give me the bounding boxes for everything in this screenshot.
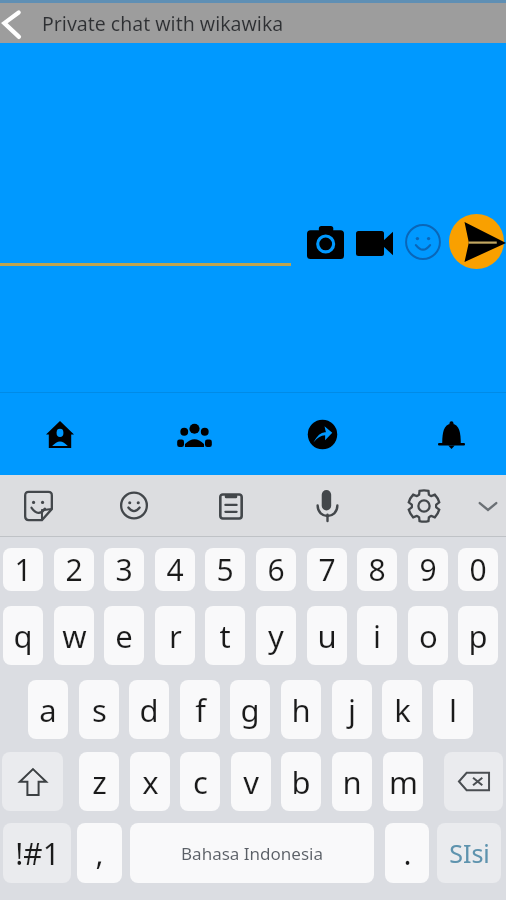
staticText: 7 xyxy=(318,549,336,590)
staticText: x xyxy=(142,761,159,803)
button[interactable]: Share xyxy=(305,417,340,452)
button[interactable]: Clipboard xyxy=(207,482,255,530)
button[interactable]: SIsi xyxy=(437,823,501,883)
button[interactable]: 2 xyxy=(54,548,94,591)
button[interactable]: 6 xyxy=(256,548,296,591)
button[interactable]: Shift xyxy=(2,752,63,811)
button[interactable]: 3 xyxy=(104,548,144,591)
staticText: k xyxy=(394,689,411,731)
button[interactable]: Home xyxy=(42,417,77,452)
staticText: r xyxy=(169,615,182,657)
staticText: h xyxy=(291,689,311,731)
staticText: 1 xyxy=(14,549,32,590)
button[interactable]: Collapse keyboard xyxy=(464,482,506,530)
button[interactable]: 8 xyxy=(357,548,397,591)
staticText: Bahasa Indonesia xyxy=(181,842,323,865)
button[interactable]: Camera xyxy=(301,221,350,264)
button[interactable]: Emoji xyxy=(110,481,158,529)
button[interactable]: Voice input xyxy=(303,481,351,529)
staticText: z xyxy=(92,761,107,803)
button[interactable]: d xyxy=(129,680,169,739)
button[interactable]: s xyxy=(79,680,119,739)
staticText: 9 xyxy=(419,549,437,590)
button[interactable]: t xyxy=(205,606,245,665)
staticText: c xyxy=(193,761,208,803)
button[interactable]: 5 xyxy=(205,548,245,591)
button[interactable]: o xyxy=(408,606,448,665)
button[interactable]: f xyxy=(180,680,220,739)
staticText: , xyxy=(95,833,104,874)
button[interactable]: y xyxy=(256,606,296,665)
button[interactable]: 1 xyxy=(3,548,43,591)
button[interactable]: j xyxy=(332,680,372,739)
staticText: w xyxy=(62,615,87,657)
staticText: 0 xyxy=(469,549,487,590)
button[interactable]: Backspace xyxy=(444,752,503,811)
staticText: m xyxy=(389,761,418,803)
staticText: g xyxy=(240,689,260,731)
button[interactable]: Back xyxy=(0,3,40,43)
staticText: SIsi xyxy=(449,836,490,870)
button[interactable]: x xyxy=(130,752,170,811)
staticText: e xyxy=(115,615,133,657)
button[interactable]: h xyxy=(281,680,321,739)
button[interactable]: . xyxy=(385,823,429,883)
staticText: . xyxy=(403,833,412,874)
button[interactable]: a xyxy=(28,680,68,739)
button[interactable]: l xyxy=(433,680,473,739)
button[interactable]: g xyxy=(230,680,270,739)
button[interactable]: b xyxy=(281,752,321,811)
button[interactable]: 4 xyxy=(155,548,195,591)
button[interactable]: Emoji xyxy=(400,220,446,265)
staticText: l xyxy=(449,689,457,731)
staticText: !#1 xyxy=(15,833,60,874)
button[interactable]: p xyxy=(458,606,498,665)
button[interactable]: !#1 xyxy=(3,823,71,883)
button[interactable]: c xyxy=(180,752,220,811)
staticText: o xyxy=(419,615,438,657)
button[interactable]: z xyxy=(79,752,119,811)
button[interactable]: Video call xyxy=(350,223,399,263)
staticText: p xyxy=(468,615,488,657)
button[interactable]: u xyxy=(307,606,347,665)
button[interactable]: w xyxy=(54,606,94,665)
button[interactable]: Settings xyxy=(400,482,448,530)
staticText: v xyxy=(243,761,259,803)
button[interactable]: 9 xyxy=(408,548,448,591)
button[interactable]: 7 xyxy=(307,548,347,591)
staticText: b xyxy=(291,761,311,803)
staticText: i xyxy=(373,615,381,657)
staticText: Private chat with wikawika xyxy=(42,10,284,37)
staticText: 6 xyxy=(267,549,285,590)
staticText: y xyxy=(268,615,284,657)
staticText: n xyxy=(342,761,362,803)
staticText: f xyxy=(195,689,206,731)
button[interactable]: m xyxy=(383,752,423,811)
button[interactable]: Groups xyxy=(177,417,212,452)
button[interactable]: Bahasa Indonesia xyxy=(130,823,374,883)
button[interactable]: Send xyxy=(449,214,504,269)
button[interactable]: r xyxy=(155,606,195,665)
staticText: u xyxy=(317,615,337,657)
staticText: q xyxy=(13,615,33,657)
button[interactable]: , xyxy=(77,823,122,883)
staticText: 2 xyxy=(65,549,83,590)
staticText: t xyxy=(219,615,231,657)
button[interactable]: Notifications xyxy=(434,417,469,452)
button[interactable]: n xyxy=(332,752,372,811)
button[interactable]: 0 xyxy=(458,548,498,591)
staticText: s xyxy=(92,689,107,731)
button[interactable]: v xyxy=(231,752,271,811)
staticText: 5 xyxy=(216,549,234,590)
button[interactable]: k xyxy=(382,680,422,739)
button[interactable]: e xyxy=(104,606,144,665)
button[interactable]: Stickers xyxy=(14,482,62,530)
staticText: a xyxy=(39,689,57,731)
staticText: d xyxy=(139,689,159,731)
button[interactable]: i xyxy=(357,606,397,665)
staticText: 3 xyxy=(115,549,133,590)
button[interactable]: q xyxy=(3,606,43,665)
staticText: 4 xyxy=(166,549,184,590)
staticText: j xyxy=(348,689,356,731)
staticText: 8 xyxy=(368,549,386,590)
